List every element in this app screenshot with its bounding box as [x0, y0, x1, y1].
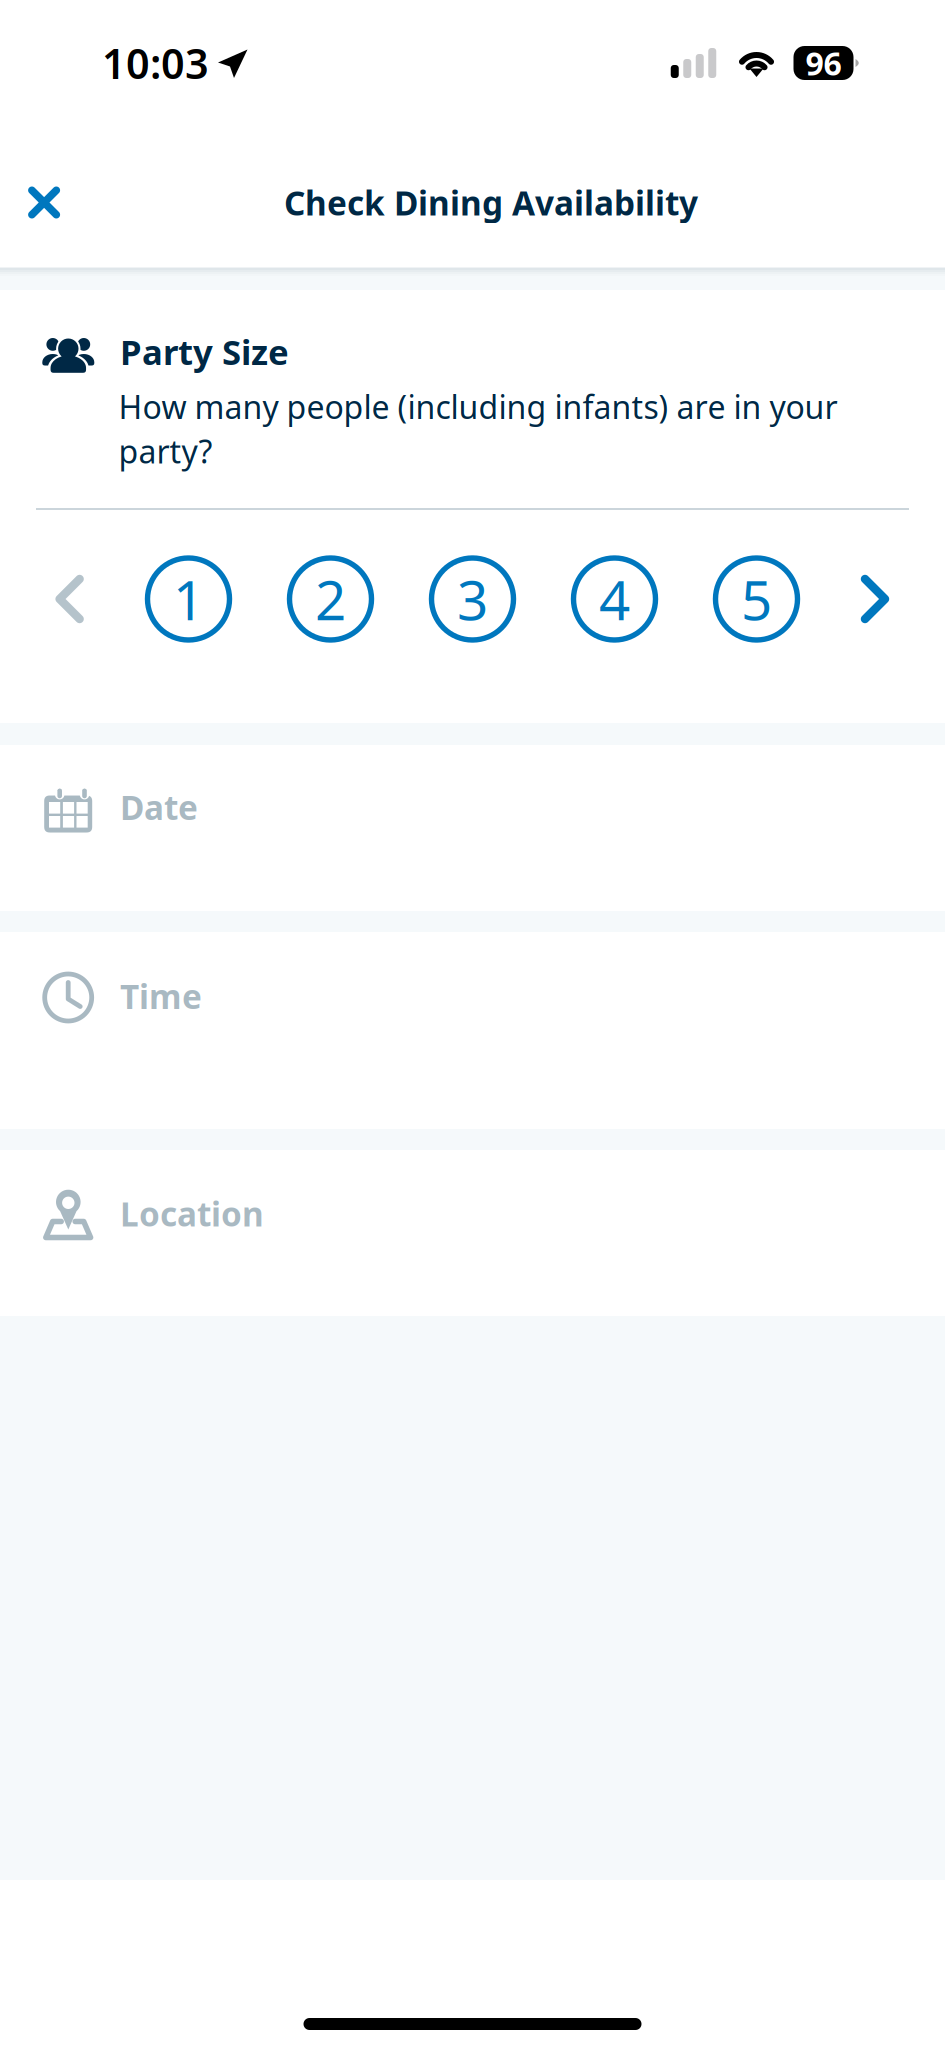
staticText: Location	[120, 1191, 264, 1236]
button[interactable]: 3	[429, 555, 516, 642]
button[interactable]: Decrease party size	[22, 551, 118, 647]
button[interactable]: Close	[0, 158, 88, 246]
staticText: 10:03	[102, 36, 209, 90]
button[interactable]: 2	[287, 555, 374, 642]
staticText: 1	[173, 563, 204, 635]
staticText: Time	[120, 974, 202, 1018]
button[interactable]: Date	[0, 745, 945, 911]
staticText: 2	[315, 563, 346, 635]
button[interactable]: 4	[571, 555, 658, 642]
staticText: 5	[741, 563, 772, 635]
staticText: Date	[120, 785, 198, 829]
staticText: 4	[599, 563, 630, 635]
button[interactable]: Time	[0, 932, 945, 1129]
staticText: Party Size	[120, 328, 289, 374]
button[interactable]: 5	[713, 555, 800, 642]
staticText: 3	[457, 563, 488, 635]
staticText: Check Dining Availability	[284, 180, 698, 225]
staticText: 96	[805, 42, 841, 84]
button[interactable]: Location	[0, 1150, 945, 1316]
staticText: party?	[118, 430, 212, 472]
button[interactable]: Increase party size	[827, 551, 923, 647]
staticText: How many people (including infants) are …	[118, 385, 837, 428]
button[interactable]: 1	[145, 555, 232, 642]
